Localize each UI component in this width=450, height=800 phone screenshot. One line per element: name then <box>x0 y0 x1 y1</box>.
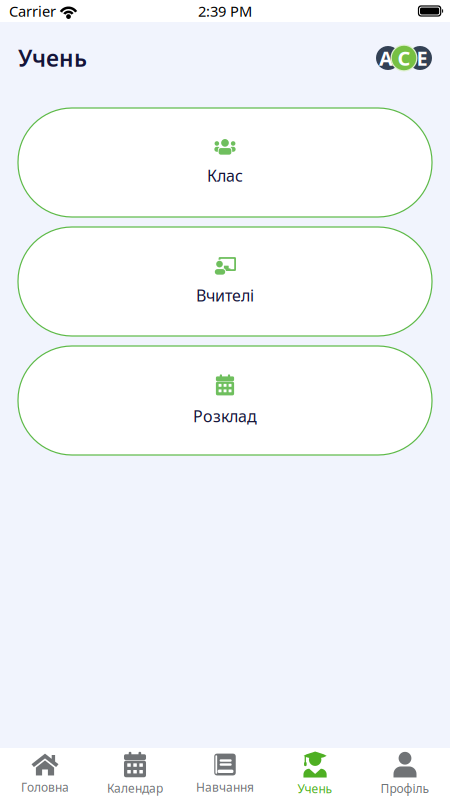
staticText: A <box>379 45 393 71</box>
staticText: Календар <box>107 780 163 796</box>
button[interactable]: Календар <box>90 748 180 800</box>
staticText: Вчителі <box>196 285 254 306</box>
staticText: Учень <box>297 781 332 797</box>
button[interactable]: Розклад <box>18 346 432 455</box>
staticText: Навчання <box>196 779 254 795</box>
staticText: E <box>416 45 427 71</box>
staticText: Розклад <box>193 405 257 427</box>
button[interactable]: Профіль <box>360 748 450 800</box>
button[interactable]: Клас <box>18 108 432 217</box>
button[interactable]: Вчителі <box>18 227 432 336</box>
staticText: Учень <box>18 43 87 73</box>
staticText: Carrier <box>9 1 56 21</box>
staticText: Головна <box>21 779 69 795</box>
button[interactable]: ACE <box>376 44 432 71</box>
staticText: C <box>397 45 410 71</box>
button[interactable]: Учень <box>270 748 360 800</box>
staticText: Профіль <box>380 780 429 796</box>
staticText: Клас <box>207 165 243 186</box>
staticText: 2:39 PM <box>198 1 252 21</box>
button[interactable]: Головна <box>0 748 90 800</box>
button[interactable]: Навчання <box>180 748 270 800</box>
